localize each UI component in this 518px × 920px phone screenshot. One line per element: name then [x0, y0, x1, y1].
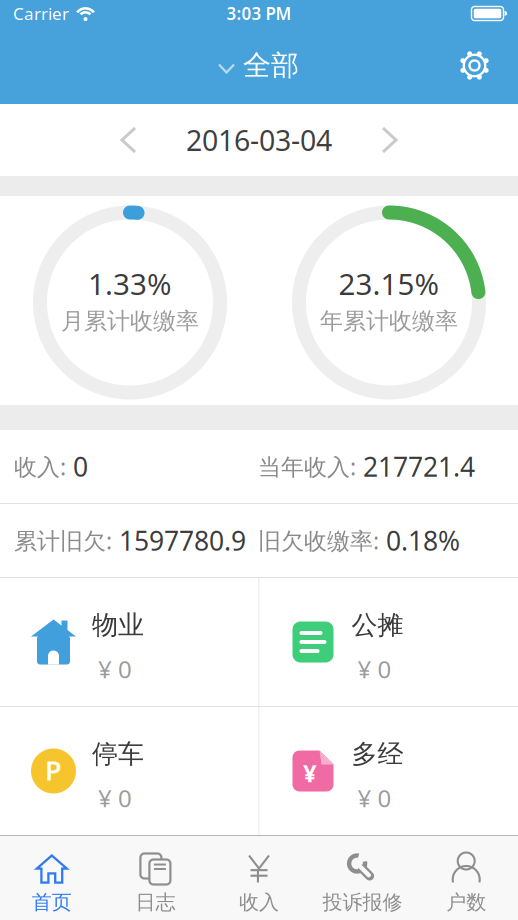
staticText: 0.18% — [386, 522, 460, 559]
staticText: ¥ 0 — [357, 652, 391, 685]
button[interactable]: 全部 — [219, 48, 299, 83]
staticText: 2016-03-04 — [186, 121, 332, 159]
button[interactable]: 收入 — [207, 836, 311, 920]
staticText: 首页 — [32, 890, 72, 915]
button[interactable]: Next day — [371, 116, 518, 164]
staticText: 1.33% — [88, 263, 172, 304]
staticText: P — [45, 752, 62, 788]
staticText: 公摊 — [351, 609, 403, 642]
button[interactable]: 公摊 — [259, 578, 518, 706]
button[interactable]: 首页 — [0, 836, 104, 920]
staticText: 0 — [73, 448, 88, 485]
staticText: Carrier — [13, 2, 69, 25]
button[interactable]: 户数 — [414, 836, 518, 920]
staticText: ¥ 0 — [98, 652, 132, 685]
staticText: 年累计收缴率 — [320, 307, 458, 336]
staticText: 23.15% — [338, 263, 439, 304]
staticText: 217721.4 — [363, 448, 475, 485]
button[interactable]: 投诉报修 — [311, 836, 414, 920]
button[interactable]: Previous day — [0, 116, 147, 164]
staticText: 月累计收缴率 — [61, 307, 199, 336]
button[interactable]: 物业 — [0, 578, 258, 706]
staticText: ¥ 0 — [357, 781, 391, 814]
staticText: 停车 — [92, 738, 144, 771]
staticText: 日志 — [135, 890, 175, 915]
staticText: ¥ 0 — [98, 781, 132, 814]
button[interactable]: ¥ — [259, 707, 518, 835]
button[interactable]: 日志 — [104, 836, 207, 920]
staticText: 全部 — [243, 48, 299, 83]
staticText: 收入: — [14, 451, 66, 482]
button[interactable]: Settings — [458, 49, 518, 82]
staticText: 3:03 PM — [226, 2, 291, 25]
staticText: 累计旧欠: — [14, 525, 112, 556]
staticText: 当年收入: — [258, 451, 356, 482]
staticText: ¥ — [303, 757, 317, 789]
staticText: 多经 — [351, 738, 403, 771]
staticText: 投诉报修 — [323, 890, 403, 915]
staticText: 旧欠收缴率: — [258, 525, 379, 556]
staticText: 物业 — [92, 609, 144, 642]
button[interactable]: P — [0, 707, 258, 835]
staticText: 户数 — [446, 890, 486, 915]
staticText: 1597780.9 — [119, 522, 246, 559]
staticText: 收入 — [239, 890, 279, 915]
